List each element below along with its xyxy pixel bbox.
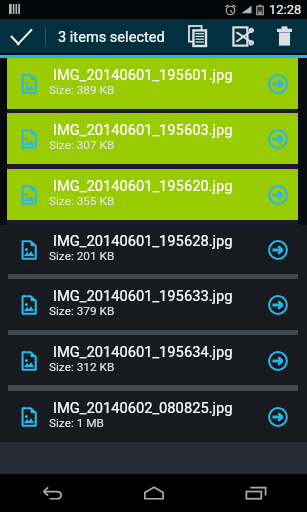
button[interactable]: Open IMG_20140602_080825.jpg [258,392,298,442]
button[interactable]: IMG_20140601_195628.jpg [0,225,307,274]
button[interactable]: Recent apps [205,474,307,512]
button[interactable]: Back [0,474,103,512]
button[interactable]: Open IMG_20140601_195634.jpg [258,336,298,385]
staticText: IMG_20140601_195634.jpg [53,343,233,360]
staticText: IMG_20140601_195633.jpg [53,287,233,304]
button[interactable]: IMG_20140601_195634.jpg [0,336,307,385]
button[interactable]: Open IMG_20140601_195603.jpg [258,113,298,164]
staticText: Size: 307 KB [49,138,115,152]
button[interactable]: Delete [265,19,303,53]
staticText: Size: 312 KB [49,360,115,374]
button[interactable]: Cut [220,19,265,53]
staticText: Size: 355 KB [49,194,115,208]
button[interactable]: Home [103,474,205,512]
button[interactable]: IMG_20140601_195633.jpg [0,280,307,330]
button[interactable]: IMG_20140602_080825.jpg [0,392,307,442]
staticText: IMG_20140601_195628.jpg [53,232,233,249]
button[interactable]: Open IMG_20140601_195620.jpg [258,169,298,220]
staticText: IMG_20140601_195601.jpg [53,66,233,83]
staticText: Size: 379 KB [49,304,115,318]
staticText: IMG_20140601_195620.jpg [53,177,233,194]
button[interactable]: Copy [174,19,220,53]
staticText: IMG_20140602_080825.jpg [53,399,233,416]
button[interactable]: Open IMG_20140601_195601.jpg [258,58,298,109]
staticText: Size: 1 MB [49,416,104,430]
button[interactable]: Open IMG_20140601_195628.jpg [258,225,298,274]
button[interactable]: IMG_20140601_195603.jpg [7,113,298,164]
button[interactable]: Open IMG_20140601_195633.jpg [258,280,298,330]
button[interactable]: IMG_20140601_195620.jpg [7,169,298,220]
staticText: Size: 201 KB [49,249,115,263]
staticText: 3 items selected [58,28,165,45]
staticText: IMG_20140601_195603.jpg [53,121,233,138]
button[interactable]: Done [0,19,45,53]
staticText: Size: 389 KB [49,83,115,97]
staticText: 12:28 [269,2,302,17]
button[interactable]: IMG_20140601_195601.jpg [7,58,298,109]
